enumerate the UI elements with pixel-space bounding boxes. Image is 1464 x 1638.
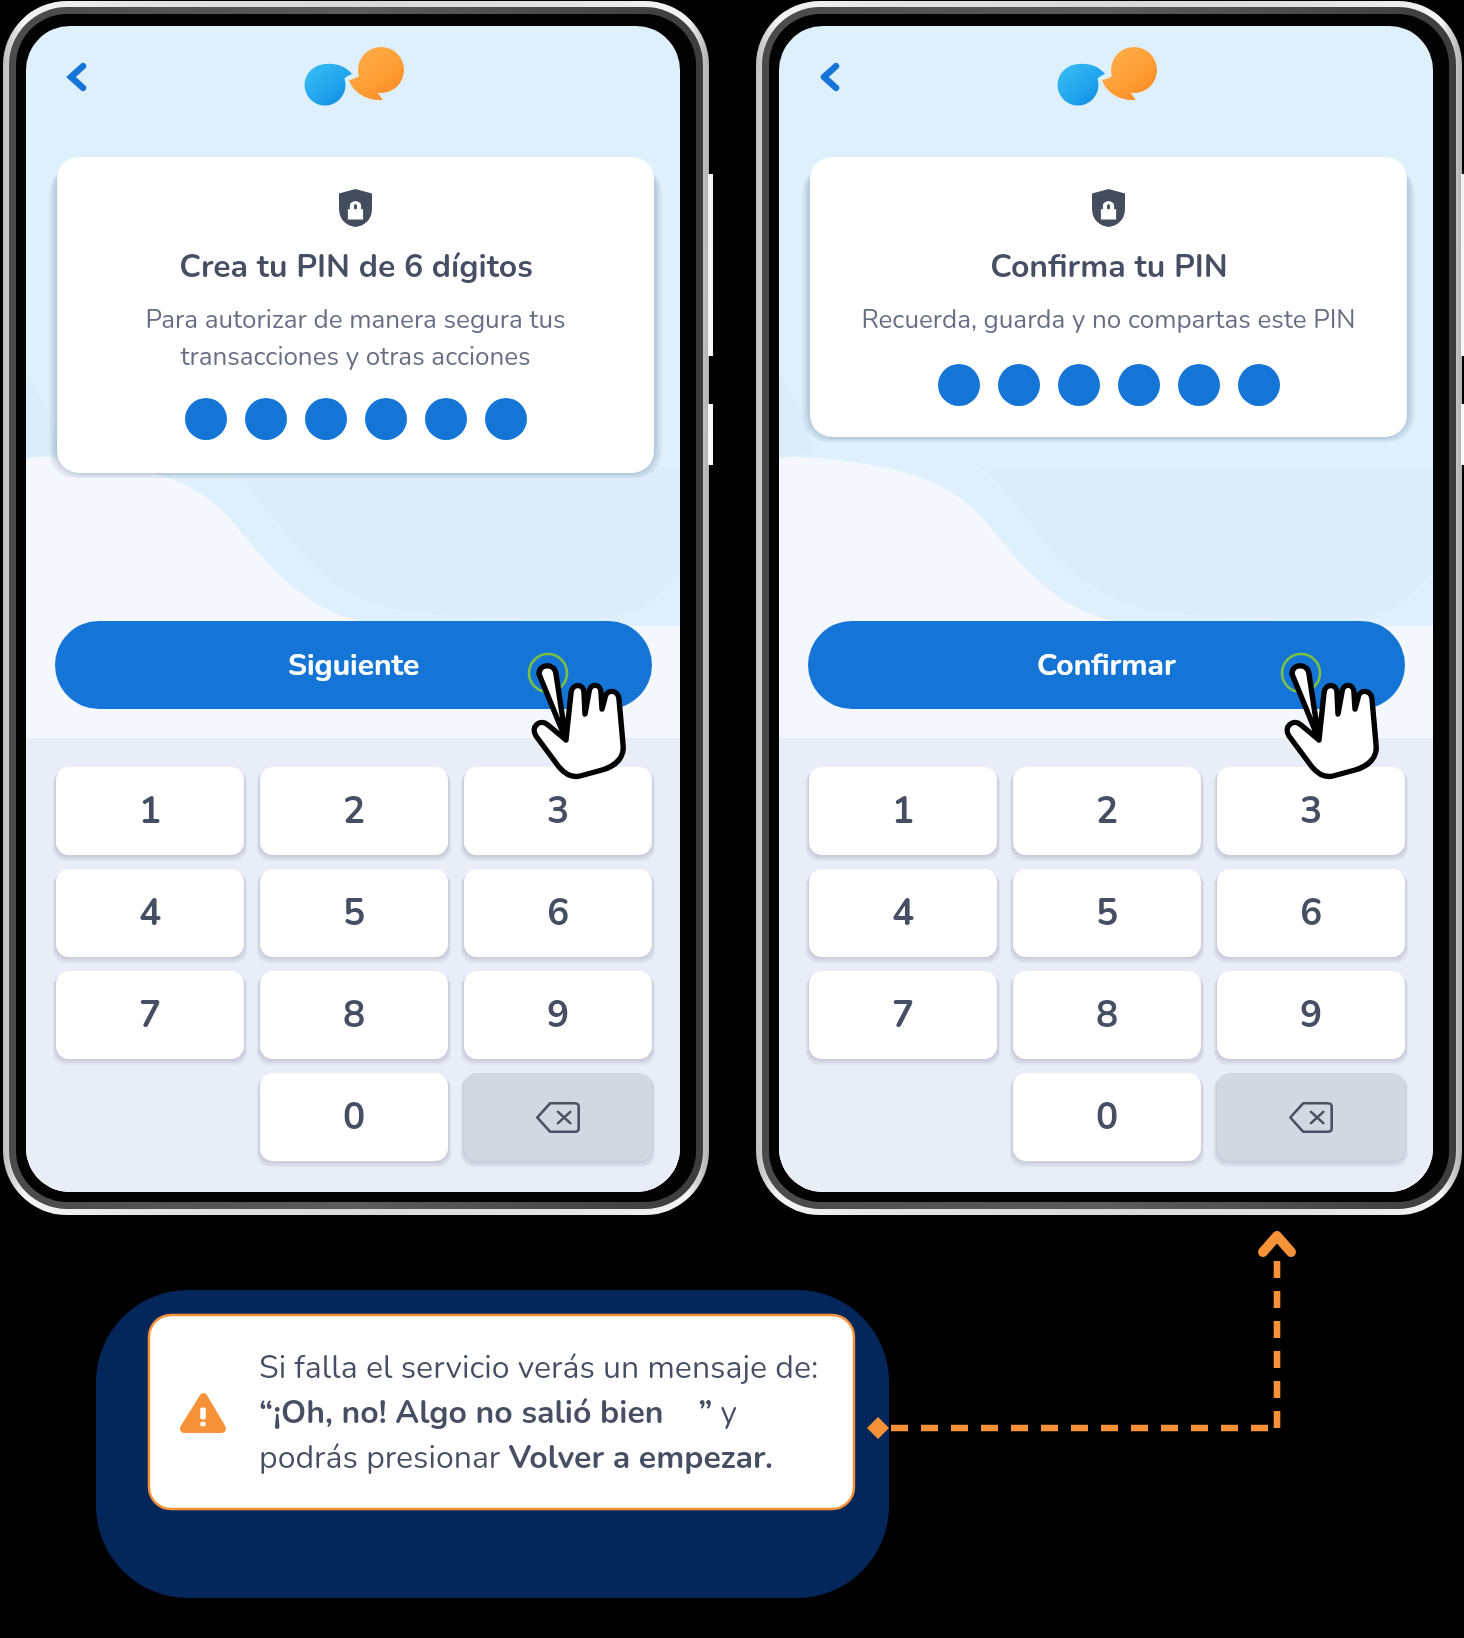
button[interactable]: 1 [56,767,244,855]
staticText: 2 [1096,786,1119,836]
staticText: 5 [343,888,366,938]
button[interactable]: 5 [260,869,448,957]
button[interactable]: 0 [260,1073,448,1161]
staticText: 1 [892,786,915,836]
staticText: 9 [547,990,570,1040]
staticText: Confirmar [1037,645,1176,686]
button[interactable]: 2 [260,767,448,855]
button[interactable]: 5 [1013,869,1201,957]
staticText: Para autorizar de manera segura tus tran… [145,302,566,375]
button[interactable]: Delete [1217,1073,1405,1161]
button[interactable]: Back [801,48,859,106]
button[interactable]: Siguiente [55,621,652,709]
staticText: 6 [1300,888,1323,938]
button[interactable]: 8 [260,971,448,1059]
staticText: 3 [1300,786,1323,836]
staticText: 2 [343,786,366,836]
button[interactable]: 4 [809,869,997,957]
staticText: 7 [139,990,162,1040]
staticText: Crea tu PIN de 6 dígitos [179,245,533,289]
button[interactable]: 3 [1217,767,1405,855]
button[interactable]: 3 [464,767,652,855]
button[interactable]: 8 [1013,971,1201,1059]
staticText: 3 [547,786,570,836]
button[interactable]: 7 [809,971,997,1059]
button[interactable]: 0 [1013,1073,1201,1161]
staticText: 6 [547,888,570,938]
staticText: Si falla el servicio verás un mensaje de… [259,1346,819,1480]
button[interactable]: Confirmar [808,621,1405,709]
button[interactable]: 1 [809,767,997,855]
staticText: Recuerda, guarda y no compartas este PIN [861,302,1356,337]
staticText: 4 [139,888,162,938]
button[interactable]: Delete [464,1073,652,1161]
button[interactable]: 6 [1217,869,1405,957]
button[interactable]: 4 [56,869,244,957]
staticText: Siguiente [288,645,420,686]
staticText: 1 [139,786,162,836]
button[interactable]: 2 [1013,767,1201,855]
staticText: 0 [1096,1092,1119,1142]
staticText: 0 [343,1092,366,1142]
staticText: 9 [1300,990,1323,1040]
button[interactable]: 9 [464,971,652,1059]
staticText: 7 [892,990,915,1040]
staticText: 8 [1096,990,1119,1040]
staticText: 8 [343,990,366,1040]
staticText: Confirma tu PIN [990,245,1228,289]
staticText: 4 [892,888,915,938]
button[interactable]: 7 [56,971,244,1059]
button[interactable]: 9 [1217,971,1405,1059]
button[interactable]: 6 [464,869,652,957]
button[interactable]: Back [48,48,106,106]
staticText: 5 [1096,888,1119,938]
